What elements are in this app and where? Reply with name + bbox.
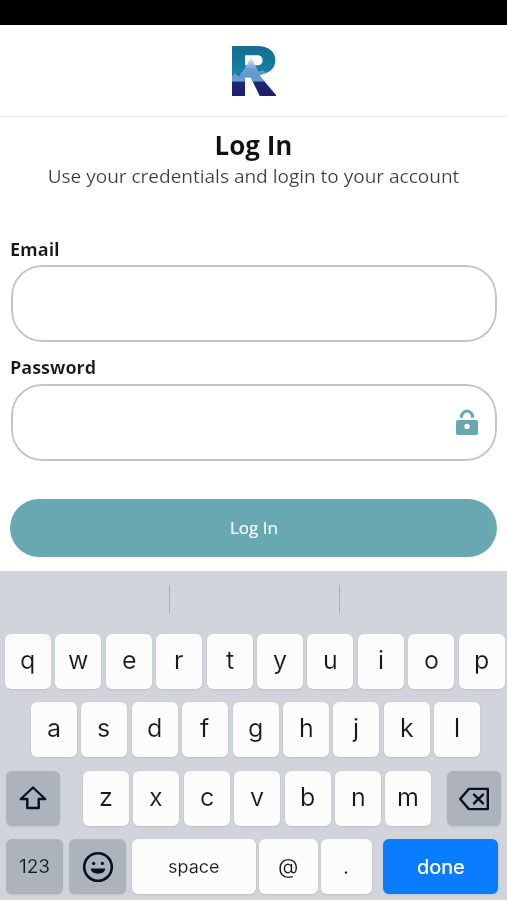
staticText: x — [149, 782, 163, 812]
button[interactable]: s — [81, 702, 127, 757]
button[interactable]: r — [156, 634, 202, 689]
button[interactable]: @ — [259, 839, 318, 894]
button[interactable]: m — [385, 771, 431, 826]
button[interactable]: z — [83, 771, 129, 826]
staticText: g — [248, 713, 264, 743]
staticText: v — [250, 782, 265, 812]
staticText: p — [474, 645, 490, 675]
staticText: space — [168, 856, 220, 878]
button[interactable]: h — [283, 702, 329, 757]
staticText: done — [417, 855, 465, 879]
staticText: t — [226, 645, 235, 675]
staticText: y — [273, 645, 288, 675]
staticText: a — [47, 713, 62, 743]
staticText: i — [378, 645, 385, 675]
button[interactable]: space — [132, 839, 256, 894]
button[interactable]: k — [384, 702, 430, 757]
button[interactable]: Shift — [6, 771, 60, 826]
staticText: f — [200, 713, 210, 743]
button[interactable]: Backspace — [447, 771, 501, 826]
button[interactable]: f — [182, 702, 228, 757]
button[interactable]: t — [207, 634, 253, 689]
staticText: j — [353, 713, 360, 743]
button[interactable] — [11, 265, 497, 342]
button[interactable]: e — [106, 634, 152, 689]
button[interactable]: 123 — [6, 839, 63, 894]
button[interactable]: Show password — [11, 384, 497, 461]
staticText: u — [323, 645, 338, 675]
button[interactable]: o — [408, 634, 454, 689]
button[interactable]: Log In — [10, 499, 497, 557]
button[interactable]: n — [335, 771, 381, 826]
button[interactable]: l — [434, 702, 480, 757]
button[interactable]: p — [459, 634, 505, 689]
staticText: r — [174, 645, 184, 675]
staticText: . — [343, 854, 350, 879]
button[interactable]: . — [321, 839, 372, 894]
staticText: z — [99, 782, 113, 812]
staticText: q — [20, 645, 36, 675]
button[interactable]: j — [333, 702, 379, 757]
button[interactable]: a — [31, 702, 77, 757]
staticText: e — [122, 645, 137, 675]
staticText: s — [97, 713, 111, 743]
button[interactable]: d — [132, 702, 178, 757]
staticText: h — [299, 713, 314, 743]
staticText: Password — [10, 355, 97, 380]
staticText: m — [397, 782, 419, 812]
button[interactable]: i — [358, 634, 404, 689]
staticText: d — [147, 713, 163, 743]
button[interactable]: q — [5, 634, 51, 689]
button[interactable]: v — [234, 771, 280, 826]
button[interactable]: done — [383, 839, 498, 894]
staticText: 123 — [19, 855, 51, 878]
staticText: o — [424, 645, 439, 675]
staticText: w — [68, 645, 89, 675]
staticText: Use your credentials and login to your a… — [0, 163, 507, 189]
staticText: Email — [10, 237, 60, 262]
staticText: Log In — [230, 516, 278, 539]
staticText: n — [351, 782, 366, 812]
staticText: b — [300, 782, 316, 812]
staticText: l — [454, 713, 461, 743]
button[interactable]: Emoji — [69, 839, 126, 894]
button[interactable]: b — [285, 771, 331, 826]
button[interactable]: c — [184, 771, 230, 826]
button[interactable]: w — [55, 634, 101, 689]
button[interactable]: u — [307, 634, 353, 689]
other: Show password — [456, 410, 478, 436]
button[interactable]: x — [133, 771, 179, 826]
staticText: c — [200, 782, 215, 812]
staticText: @ — [278, 854, 299, 879]
button[interactable]: y — [257, 634, 303, 689]
staticText: Log In — [0, 127, 507, 162]
button[interactable]: g — [233, 702, 279, 757]
staticText: k — [400, 713, 414, 743]
